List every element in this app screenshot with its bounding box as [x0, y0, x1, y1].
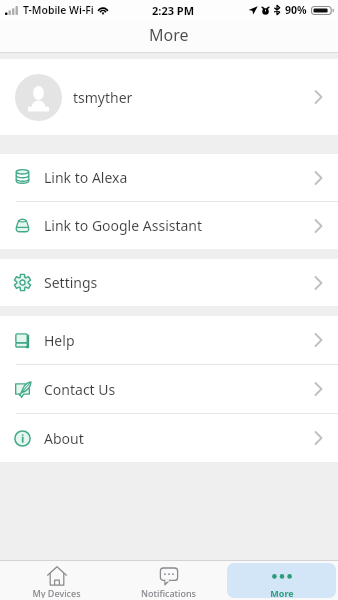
staticText: More [149, 24, 189, 46]
staticText: T-Mobile Wi-Fi [23, 3, 94, 17]
staticText: Notifications [141, 587, 196, 598]
staticText: About [44, 429, 84, 448]
other: Notifications [159, 566, 179, 586]
staticText: Link to Alexa [44, 168, 128, 187]
button[interactable]: Help [0, 316, 338, 364]
button[interactable]: My Devices [2, 563, 110, 598]
button[interactable]: tsmyther [0, 59, 338, 135]
button[interactable]: Settings [0, 259, 338, 306]
button[interactable]: Link to Alexa [0, 154, 338, 201]
staticText: Link to Google Assistant [44, 216, 203, 235]
staticText: tsmyther [73, 88, 133, 107]
staticText: Contact Us [44, 380, 116, 399]
staticText: 90% [285, 3, 307, 17]
staticText: More [270, 587, 294, 598]
button[interactable]: Notifications [114, 563, 223, 598]
other: More [271, 566, 293, 586]
button[interactable]: Link to Google Assistant [0, 202, 338, 249]
button[interactable]: More [227, 563, 336, 598]
button[interactable]: Contact Us [0, 365, 338, 413]
staticText: My Devices [32, 587, 81, 598]
other: My Devices [47, 566, 67, 586]
staticText: 2:23 PM [152, 3, 195, 18]
button[interactable]: About [0, 414, 338, 462]
staticText: Help [44, 331, 75, 350]
staticText: Settings [44, 273, 98, 292]
